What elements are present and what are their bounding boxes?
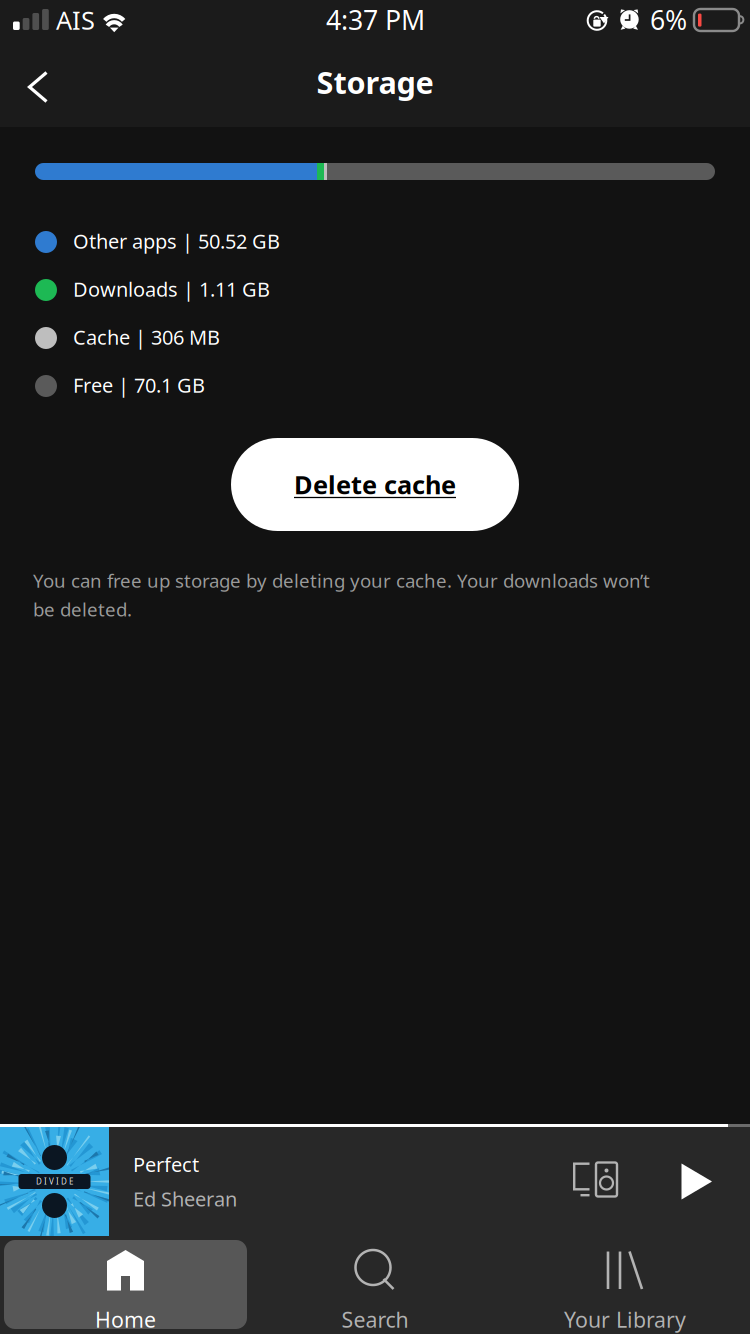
staticText: AIS — [56, 3, 95, 37]
staticText: Downloads | 1.11 GB — [73, 276, 270, 302]
staticText: 4:37 PM — [326, 2, 425, 37]
staticText: D I V I D E — [36, 1176, 73, 1187]
button[interactable]: Connect to a device — [551, 1138, 639, 1224]
staticText: 6% — [650, 2, 687, 37]
staticText: Your Library — [564, 1305, 686, 1334]
staticText: Search — [341, 1305, 408, 1334]
staticText: be deleted. — [33, 597, 132, 622]
staticText: Ed Sheeran — [133, 1185, 237, 1212]
button[interactable]: Back — [0, 47, 78, 127]
staticText: Home — [95, 1305, 156, 1334]
staticText: Free | 70.1 GB — [73, 372, 205, 398]
staticText: Perfect — [133, 1151, 199, 1177]
staticText: Delete cache — [294, 468, 456, 501]
button[interactable]: Home — [0, 1240, 250, 1329]
staticText: Other apps | 50.52 GB — [73, 228, 280, 254]
button[interactable]: Play — [639, 1137, 750, 1225]
button[interactable]: Delete cache — [231, 438, 519, 531]
staticText: Storage — [316, 62, 433, 102]
staticText: You can free up storage by deleting your… — [33, 568, 650, 593]
button[interactable]: Your Library — [500, 1240, 750, 1329]
button[interactable]: Search — [250, 1240, 500, 1329]
staticText: Cache | 306 MB — [73, 324, 220, 350]
